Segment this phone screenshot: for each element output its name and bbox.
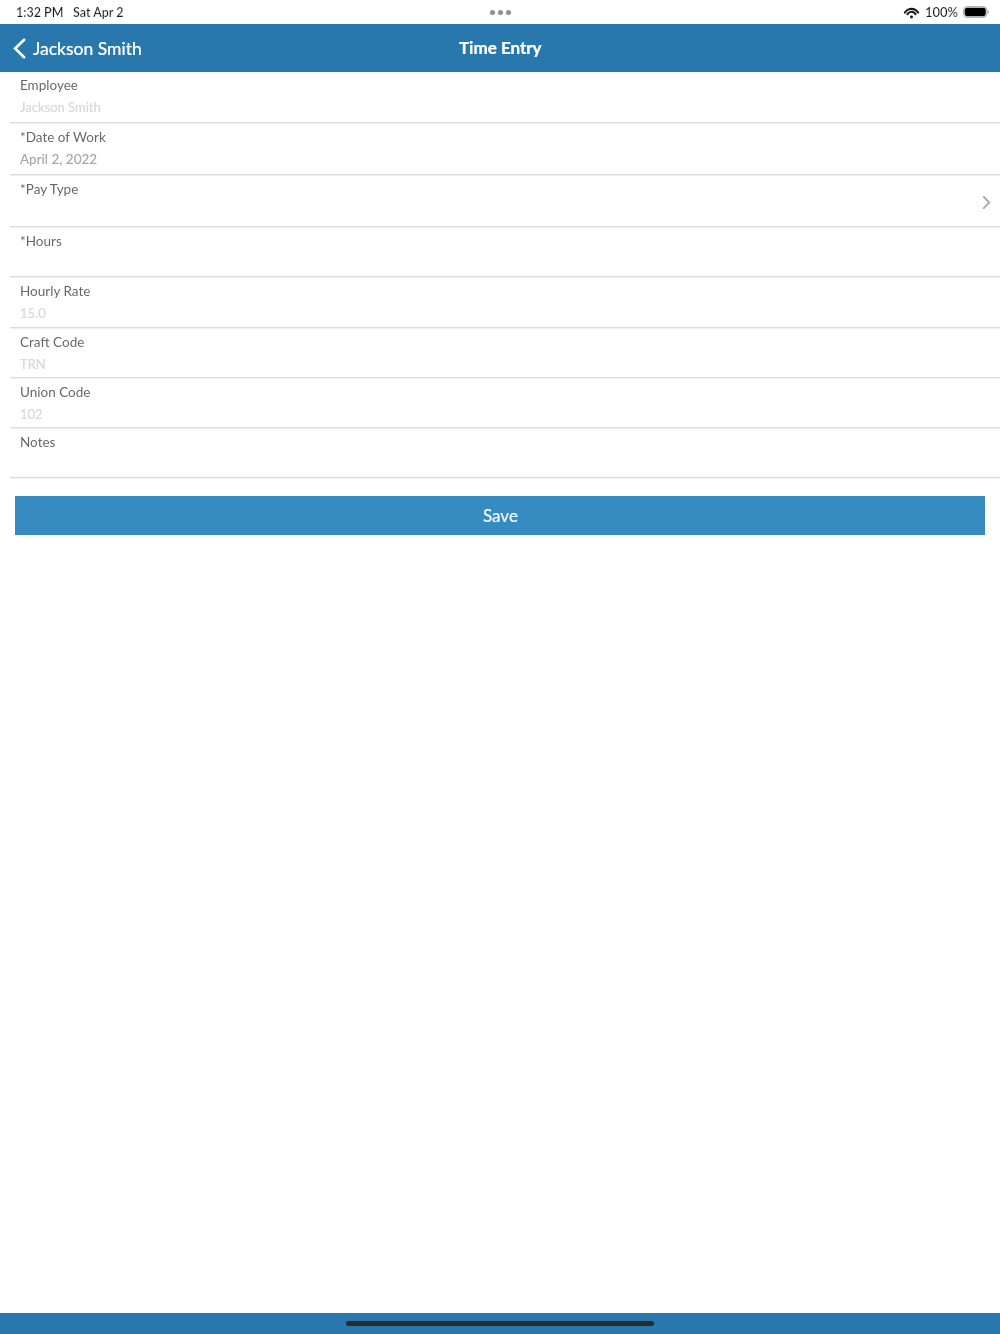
button[interactable]: Back to Jackson Smith [0,24,150,72]
button[interactable]: Save [15,496,985,535]
staticText: Jackson Smith [20,99,101,115]
staticText: Hourly Rate [20,283,91,299]
button[interactable]: Craft Code [0,329,1000,379]
staticText: 100% [925,4,959,20]
staticText: Notes [20,434,56,450]
staticText: Save [483,505,518,525]
staticText: 102 [20,406,43,422]
staticText: *Pay Type [20,181,79,197]
staticText: *Hours [20,233,62,249]
staticText: Time Entry [459,37,542,57]
staticText: Union Code [20,384,91,400]
button[interactable]: *Pay Type selector [0,176,1000,228]
button[interactable]: Union Code [0,379,1000,429]
staticText: Employee [20,77,78,93]
button[interactable]: *Hours [0,228,1000,278]
staticText: Jackson Smith [33,38,142,59]
staticText: 15.0 [20,305,46,321]
button[interactable]: Hourly Rate [0,278,1000,329]
button[interactable]: Notes [0,429,1000,479]
staticText: April 2, 2022 [20,151,98,167]
staticText: *Date of Work [20,129,106,145]
staticText: Sat Apr 2 [73,5,124,20]
button[interactable]: Employee [0,72,1000,124]
staticText: 1:32 PM [16,5,64,20]
button[interactable]: *Date of Work [0,124,1000,176]
staticText: Craft Code [20,334,85,350]
staticText: TRN [20,356,46,372]
